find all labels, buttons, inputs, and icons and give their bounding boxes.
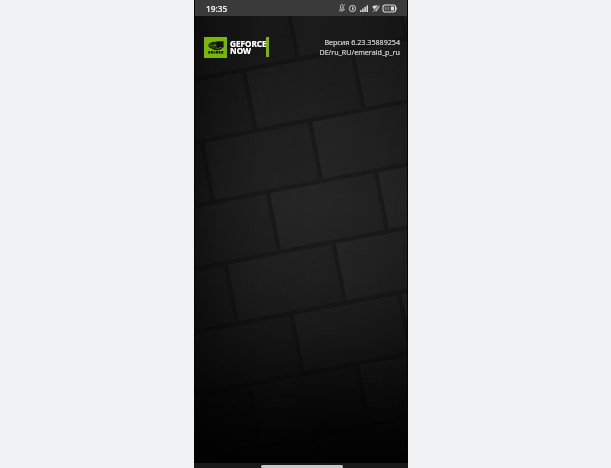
other: Home gesture bar — [261, 465, 343, 468]
staticText: Версия 6.23.35889254 — [324, 37, 400, 47]
staticText: DE/ru_RU/emerald_p_ru — [319, 47, 400, 57]
staticText: 19:35 — [206, 3, 228, 14]
staticText: GEFORCE NOW — [230, 38, 267, 56]
